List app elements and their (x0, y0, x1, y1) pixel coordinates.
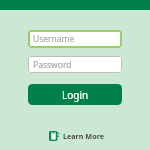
button[interactable]: Learn More (3, 131, 150, 141)
staticText: Username (33, 33, 75, 45)
button[interactable]: Password (28, 56, 122, 73)
button[interactable]: Login (28, 84, 122, 105)
button[interactable]: Username (28, 30, 122, 48)
staticText: Login (62, 88, 89, 102)
other: Learn More (49, 131, 59, 141)
staticText: Learn More (63, 131, 104, 141)
staticText: Password (33, 59, 72, 71)
